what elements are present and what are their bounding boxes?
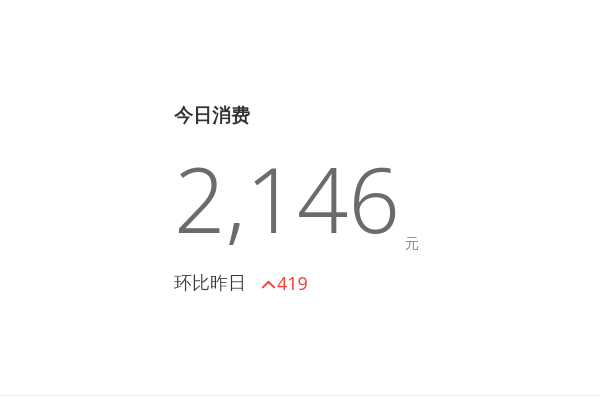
staticText: 2,146	[174, 137, 400, 260]
button[interactable]: 环比昨日	[174, 271, 308, 296]
staticText: 环比昨日	[174, 272, 246, 295]
staticText: 今日消费	[174, 104, 250, 128]
button[interactable]: Increase of 419 compared to yesterday	[262, 271, 308, 296]
staticText: 419	[277, 271, 308, 296]
button[interactable]: 今日消费	[174, 100, 419, 296]
staticText: 元	[405, 235, 419, 253]
button[interactable]: 2,146	[174, 137, 419, 260]
